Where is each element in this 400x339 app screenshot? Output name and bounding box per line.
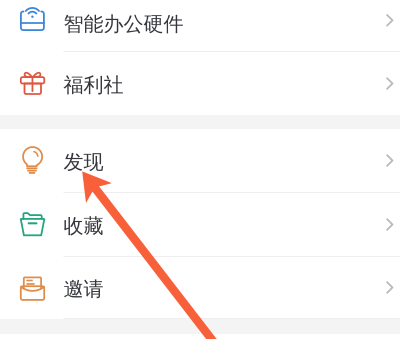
staticText: 智能办公硬件 (63, 12, 183, 36)
button[interactable]: 发现 (0, 129, 400, 192)
button[interactable]: 邀请 (0, 257, 400, 318)
button[interactable]: 收藏 (0, 193, 400, 256)
button[interactable]: 福利社 (0, 52, 400, 115)
staticText: 邀请 (63, 277, 103, 301)
staticText: 福利社 (63, 73, 123, 97)
staticText: 收藏 (63, 214, 103, 238)
staticText: 发现 (63, 150, 103, 174)
button[interactable]: 智能办公硬件 (0, 0, 400, 51)
